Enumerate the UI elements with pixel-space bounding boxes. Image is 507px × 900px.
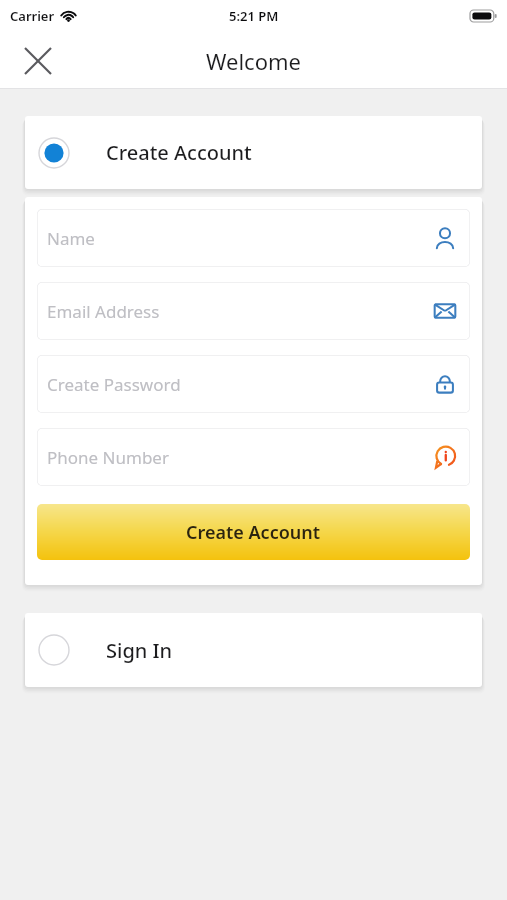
staticText: Welcome [206,46,301,76]
button[interactable]: Create Password [37,355,470,413]
button[interactable]: Create Account [37,504,470,560]
button[interactable]: Create Account [25,116,482,189]
staticText: Email Address [47,300,160,323]
staticText: Create Account [186,520,321,545]
staticText: Phone Number [47,446,169,469]
staticText: Create Password [47,373,181,396]
staticText: Carrier [10,7,55,25]
button[interactable]: Name [37,209,470,267]
staticText: 5:21 PM [229,7,279,25]
button[interactable]: Email Address [37,282,470,340]
staticText: Name [47,227,95,250]
button[interactable]: Phone Number [37,428,470,486]
staticText: Sign In [106,637,173,664]
button[interactable]: Sign In [25,613,482,687]
button[interactable]: Close [14,37,62,85]
staticText: Create Account [106,139,252,166]
